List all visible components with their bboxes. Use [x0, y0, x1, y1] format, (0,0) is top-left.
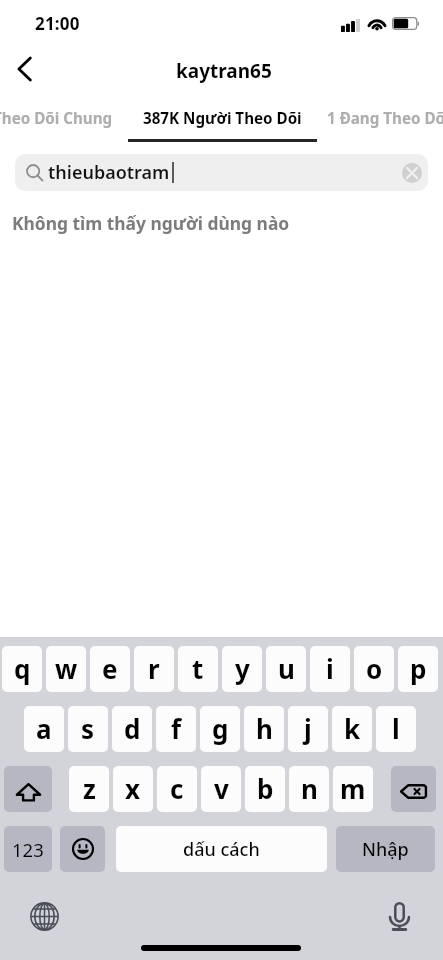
staticText: k — [344, 711, 361, 746]
button[interactable]: 123 — [4, 826, 52, 872]
staticText: s — [81, 711, 95, 746]
staticText: t — [192, 651, 204, 686]
staticText: 387K Người Theo Dõi — [143, 108, 302, 129]
staticText: p — [410, 651, 427, 686]
staticText: q — [14, 651, 31, 686]
button[interactable]: n — [289, 766, 329, 812]
button[interactable]: t — [178, 646, 218, 692]
button[interactable]: z — [69, 766, 109, 812]
staticText: u — [278, 651, 295, 686]
button[interactable]: f — [156, 706, 196, 752]
button[interactable]: c — [157, 766, 197, 812]
button[interactable]: o — [354, 646, 394, 692]
staticText: Nhập — [362, 837, 409, 862]
button[interactable]: b — [245, 766, 285, 812]
staticText: l — [392, 711, 400, 746]
staticText: d — [124, 711, 141, 746]
staticText: w — [55, 651, 78, 686]
staticText: m — [340, 771, 366, 806]
staticText: 1 Đang Theo Dõi — [327, 108, 443, 129]
button[interactable]: a — [24, 706, 64, 752]
button[interactable]: p — [398, 646, 438, 692]
staticText: r — [148, 651, 160, 686]
button[interactable]: j — [288, 706, 328, 752]
staticText: x — [125, 771, 141, 806]
button[interactable]: Back — [2, 46, 48, 92]
staticText: h — [256, 711, 273, 746]
staticText: n — [301, 771, 318, 806]
staticText: e — [102, 651, 118, 686]
staticText: Không tìm thấy người dùng nào — [12, 211, 290, 235]
staticText: c — [170, 771, 184, 806]
staticText: a — [36, 711, 52, 746]
staticText: v — [214, 771, 229, 806]
button[interactable]: r — [134, 646, 174, 692]
button[interactable]: w — [46, 646, 86, 692]
button[interactable]: s — [68, 706, 108, 752]
staticText: o — [366, 651, 383, 686]
button[interactable]: i — [310, 646, 350, 692]
button[interactable]: x — [113, 766, 153, 812]
staticText: g — [212, 711, 229, 746]
button[interactable]: 1 Đang Theo Dõi — [317, 100, 443, 139]
staticText: i — [326, 651, 334, 686]
button[interactable]: dấu cách — [116, 826, 327, 872]
staticText: Theo Dõi Chung — [0, 108, 113, 129]
staticText: f — [171, 711, 182, 746]
button[interactable]: Dictation — [384, 901, 414, 931]
staticText: j — [304, 711, 312, 746]
button[interactable]: m — [333, 766, 373, 812]
staticText: thieubaotram — [48, 160, 170, 185]
staticText: kaytran65 — [176, 58, 272, 84]
button[interactable]: Change keyboard — [29, 901, 59, 931]
staticText: 21:00 — [35, 12, 80, 35]
button[interactable]: Theo Dõi Chung — [0, 100, 128, 139]
button[interactable]: thieubaotram — [15, 154, 428, 191]
button[interactable]: Key — [4, 766, 52, 812]
staticText: b — [257, 771, 274, 806]
button[interactable]: 387K Người Theo Dõi — [128, 100, 317, 139]
staticText: z — [83, 771, 96, 806]
button[interactable]: v — [201, 766, 241, 812]
button[interactable]: Key — [60, 826, 105, 872]
button[interactable]: y — [222, 646, 262, 692]
button[interactable]: g — [200, 706, 240, 752]
button[interactable]: k — [332, 706, 372, 752]
button[interactable]: d — [112, 706, 152, 752]
staticText: y — [235, 651, 250, 686]
staticText: 123 — [12, 837, 44, 862]
button[interactable]: q — [2, 646, 42, 692]
button[interactable]: Nhập — [336, 826, 435, 872]
button[interactable]: Clear text — [400, 161, 423, 184]
button[interactable]: e — [90, 646, 130, 692]
staticText: dấu cách — [183, 837, 260, 862]
button[interactable]: u — [266, 646, 306, 692]
button[interactable]: l — [376, 706, 416, 752]
button[interactable]: Key — [391, 766, 436, 812]
button[interactable]: h — [244, 706, 284, 752]
